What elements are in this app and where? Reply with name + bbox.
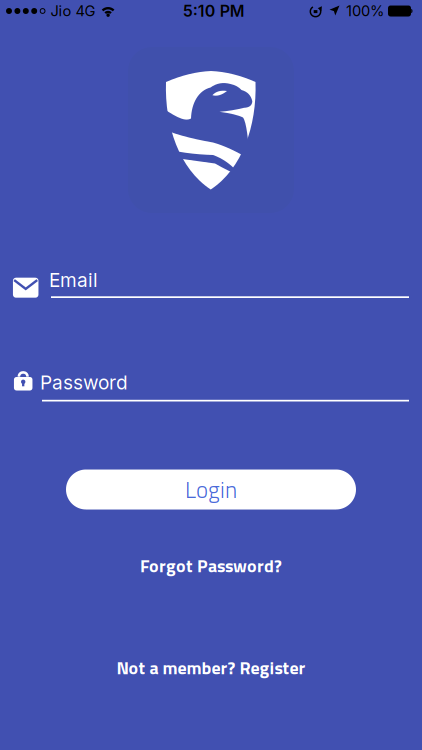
button[interactable]: Email — [0, 268, 422, 302]
staticText: Jio 4G — [51, 2, 96, 20]
staticText: Forgot Password? — [140, 552, 282, 579]
button[interactable]: Password — [0, 368, 422, 404]
button[interactable]: Login — [66, 469, 356, 509]
button[interactable] — [128, 47, 294, 213]
staticText: Not a member? Register — [116, 654, 305, 681]
button[interactable]: Not a member? Register — [116, 654, 305, 681]
button[interactable]: Forgot Password? — [140, 552, 282, 579]
staticText: Password — [40, 371, 128, 394]
staticText: Email — [49, 268, 98, 292]
staticText: Login — [185, 472, 237, 507]
staticText: 100% — [346, 2, 384, 20]
staticText: 5:10 PM — [183, 1, 245, 21]
